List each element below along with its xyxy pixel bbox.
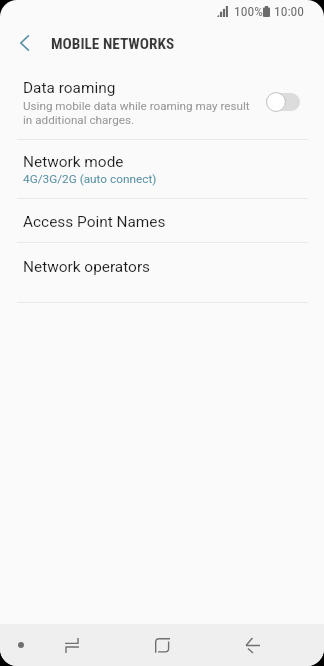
button[interactable]: Network operators — [0, 243, 324, 303]
staticText: MOBILE NETWORKS — [51, 35, 175, 53]
staticText: Access Point Names — [23, 213, 166, 231]
button[interactable]: Network mode — [0, 140, 324, 199]
button[interactable]: Home — [139, 624, 186, 666]
button[interactable]: Navigate up — [8, 26, 40, 58]
staticText: 4G/3G/2G (auto connect) — [23, 172, 157, 186]
staticText: Using mobile data while roaming may resu… — [23, 99, 250, 127]
button[interactable]: Back — [229, 624, 276, 666]
staticText: 10:00 — [274, 3, 305, 19]
staticText: Network mode — [23, 153, 124, 171]
button[interactable]: Data roaming — [0, 66, 324, 140]
staticText: Data roaming — [23, 79, 116, 97]
button[interactable]: Assistant — [4, 624, 37, 666]
staticText: 100% — [234, 3, 263, 19]
staticText: Network operators — [23, 258, 151, 276]
button[interactable]: Access Point Names — [0, 199, 324, 243]
button[interactable]: Recent apps — [48, 624, 95, 666]
button[interactable]: Data roaming, off — [265, 91, 300, 112]
